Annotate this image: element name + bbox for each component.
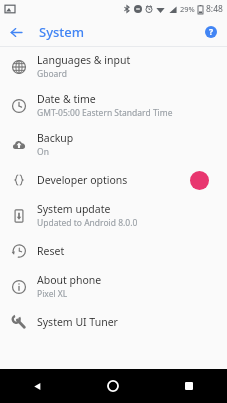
- staticText: System: [39, 23, 85, 41]
- staticText: ?: [209, 26, 214, 38]
- button[interactable]: Back: [4, 20, 28, 44]
- button[interactable]: System UI Tuner: [0, 306, 227, 338]
- staticText: 29%: [180, 4, 195, 14]
- button[interactable]: Help: [200, 21, 222, 43]
- button[interactable]: Languages & input: [0, 47, 227, 86]
- staticText: System UI Tuner: [37, 315, 118, 329]
- staticText: Languages & input: [37, 53, 131, 67]
- staticText: Gboard: [37, 68, 67, 80]
- staticText: Developer options: [37, 173, 128, 187]
- staticText: Date & time: [37, 92, 96, 106]
- staticText: Pixel XL: [37, 288, 68, 300]
- staticText: GMT-05:00 Eastern Standard Time: [37, 107, 173, 119]
- staticText: About phone: [37, 273, 102, 287]
- staticText: System update: [37, 202, 111, 216]
- staticText: Updated to Android 8.0.0: [37, 217, 138, 229]
- button[interactable]: Date & time: [0, 86, 227, 125]
- staticText: Backup: [37, 131, 74, 145]
- button[interactable]: Reset: [0, 235, 227, 267]
- button[interactable]: Recents: [151, 369, 227, 403]
- button[interactable]: Home: [75, 369, 151, 403]
- button[interactable]: System update: [0, 196, 227, 235]
- button[interactable]: Developer options: [0, 164, 227, 196]
- button[interactable]: About phone: [0, 267, 227, 306]
- button[interactable]: Backup: [0, 125, 227, 164]
- staticText: On: [37, 146, 49, 158]
- staticText: Reset: [37, 244, 65, 258]
- button[interactable]: Back: [0, 369, 75, 403]
- staticText: 8:48: [206, 3, 223, 15]
